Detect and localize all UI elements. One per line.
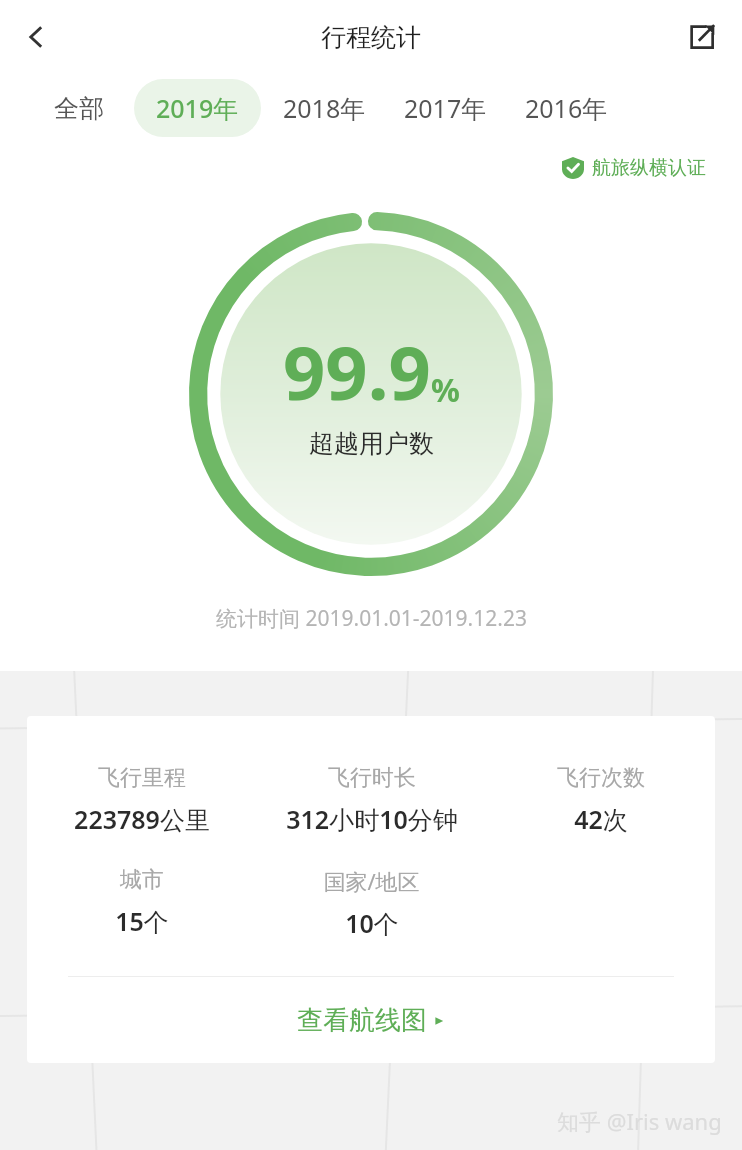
staticText: 航旅纵横认证 (592, 156, 706, 180)
button[interactable]: 2017年 (396, 79, 495, 137)
button[interactable]: 航旅纵横认证 (558, 152, 710, 184)
staticText: % (431, 368, 460, 412)
staticText: 知乎 @Iris wang (557, 1106, 722, 1136)
button[interactable]: 2016年 (517, 79, 616, 137)
button[interactable]: 飞行时长 (257, 764, 486, 836)
button[interactable]: Share (674, 9, 730, 65)
button[interactable]: 2018年 (275, 79, 374, 137)
staticText: 城市 (120, 866, 164, 894)
staticText: 飞行时长 (328, 764, 416, 792)
staticText: 2016年 (525, 91, 608, 125)
staticText: 全部 (54, 93, 104, 124)
staticText: 飞行里程 (98, 764, 186, 792)
staticText: 行程统计 (321, 22, 421, 53)
staticText: 99.9 (283, 321, 431, 422)
staticText: 2018年 (283, 91, 366, 125)
button[interactable]: Back (8, 9, 64, 65)
staticText: 国家/地区 (323, 866, 420, 896)
button[interactable]: 国家/地区 (257, 866, 486, 940)
staticText: 223789公里 (74, 802, 210, 836)
button[interactable]: 飞行次数 (486, 764, 715, 836)
staticText: 10个 (345, 906, 399, 940)
button[interactable]: 查看航线图 (27, 977, 715, 1063)
button[interactable]: 城市 (27, 866, 257, 938)
staticText: 飞行次数 (557, 764, 645, 792)
staticText: 312小时10分钟 (286, 802, 458, 836)
staticText: 超越用户数 (309, 428, 434, 459)
button[interactable]: 2019年 (134, 79, 261, 137)
staticText: 42次 (574, 802, 628, 836)
button[interactable]: 全部 (46, 81, 112, 136)
staticText: 统计时间 2019.01.01-2019.12.23 (216, 604, 527, 633)
staticText: 15个 (115, 904, 169, 938)
staticText: 查看航线图 (297, 1004, 427, 1037)
staticText: 2019年 (156, 91, 239, 125)
staticText: 2017年 (404, 91, 487, 125)
button[interactable]: 飞行里程 (27, 764, 257, 836)
